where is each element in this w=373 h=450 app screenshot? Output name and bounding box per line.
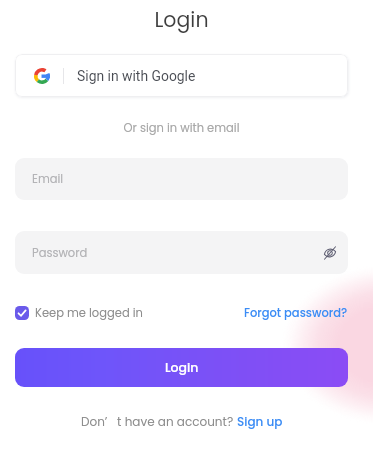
button[interactable]: Sign up xyxy=(237,413,283,430)
button[interactable]: Sign in with Google xyxy=(15,54,348,97)
button[interactable]: Show password xyxy=(320,243,340,263)
button[interactable]: Keep me logged in xyxy=(15,305,143,321)
button[interactable]: Login xyxy=(15,348,348,387)
staticText: Sign in with Google xyxy=(77,68,196,84)
staticText: Login xyxy=(15,5,348,34)
staticText: Password xyxy=(32,245,88,261)
staticText: Login xyxy=(165,359,199,376)
button[interactable]: Password xyxy=(15,231,348,274)
staticText: Email xyxy=(32,171,64,187)
button[interactable]: Forgot password? xyxy=(244,305,348,321)
staticText: Keep me logged in xyxy=(35,305,143,321)
staticText: Don’ t have an account? xyxy=(81,413,237,430)
staticText: Or sign in with email xyxy=(15,120,348,136)
button[interactable]: Email xyxy=(15,158,348,200)
